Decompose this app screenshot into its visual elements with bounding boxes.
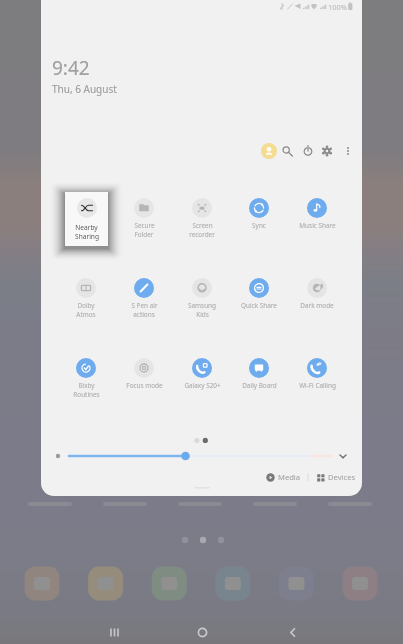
staticText: Kids xyxy=(196,310,209,319)
button[interactable]: Dolby xyxy=(60,278,112,319)
staticText: Quick Share xyxy=(241,301,277,310)
button[interactable]: Expand xyxy=(335,448,351,464)
staticText: Bixby xyxy=(78,381,95,390)
staticText: Devices xyxy=(328,472,356,482)
button[interactable]: Galaxy S20+ xyxy=(176,358,228,390)
staticText: 100% xyxy=(328,2,348,12)
button[interactable]: Power xyxy=(299,142,317,160)
staticText: Screen xyxy=(192,221,213,230)
staticText: Sharing xyxy=(75,232,99,241)
button[interactable]: Samsung xyxy=(176,278,228,319)
button[interactable]: More options xyxy=(339,142,357,160)
button[interactable]: Music Share xyxy=(291,198,343,230)
staticText: Samsung xyxy=(188,301,216,310)
button[interactable]: Recents xyxy=(92,610,136,644)
button[interactable]: Media xyxy=(266,472,301,482)
staticText: actions xyxy=(133,310,155,319)
staticText: Secure xyxy=(134,221,155,230)
staticText: Folder xyxy=(134,230,154,239)
button[interactable]: Quick Share xyxy=(233,278,285,310)
staticText: Focus mode xyxy=(126,381,163,390)
staticText: Galaxy S20+ xyxy=(184,381,221,390)
button[interactable]: Bixby xyxy=(60,358,112,399)
staticText: Daily Board xyxy=(242,381,277,390)
button[interactable]: S Pen air xyxy=(118,278,170,319)
staticText: Dolby xyxy=(77,301,95,310)
staticText: S Pen air xyxy=(131,301,158,310)
button[interactable]: Wi-Fi Calling xyxy=(291,358,343,390)
button[interactable]: Dark mode xyxy=(291,278,343,310)
staticText: recorder xyxy=(189,230,215,239)
staticText: Music Share xyxy=(299,221,336,230)
button[interactable]: Devices xyxy=(316,472,356,482)
button[interactable]: Search xyxy=(278,142,296,160)
staticText: Nearby xyxy=(75,223,98,232)
button[interactable]: Account xyxy=(261,143,277,159)
staticText: Sync xyxy=(252,221,266,230)
button[interactable]: Settings xyxy=(318,142,336,160)
button[interactable]: Nearby xyxy=(65,192,108,246)
button[interactable]: Screen xyxy=(176,198,228,239)
staticText: Dark mode xyxy=(300,301,334,310)
staticText: Atmos xyxy=(76,310,96,319)
button[interactable]: Focus mode xyxy=(118,358,170,390)
staticText: Thu, 6 August xyxy=(52,82,117,96)
button[interactable]: Home xyxy=(180,610,224,644)
staticText: Media xyxy=(278,472,301,482)
staticText: Wi-Fi Calling xyxy=(299,381,336,390)
button[interactable]: Daily Board xyxy=(233,358,285,390)
staticText: Routines xyxy=(73,390,100,399)
staticText: 9:42 xyxy=(52,55,90,81)
button[interactable]: Back xyxy=(270,610,314,644)
button[interactable]: Secure xyxy=(118,198,170,239)
button[interactable]: Sync xyxy=(233,198,285,230)
